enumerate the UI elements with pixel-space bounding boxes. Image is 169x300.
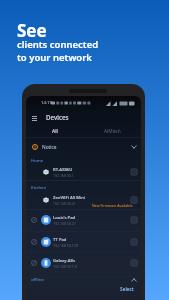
button[interactable]: offline — [31, 274, 137, 286]
button[interactable]: ZenWiFi AX Mini — [26, 191, 141, 209]
staticText: 192.168.50.27 — [53, 221, 76, 226]
staticText: AiMesh — [104, 128, 121, 135]
staticText: Kitchen — [31, 185, 47, 191]
staticText: 192.168.50.1 — [53, 173, 74, 178]
staticText: New Firmware Available — [92, 203, 133, 208]
button[interactable]: TT Pad — [26, 231, 141, 253]
staticText: 192.168.50.21 — [53, 201, 76, 206]
button[interactable]: RT-AX86U — [26, 164, 141, 180]
staticText: Select — [120, 286, 134, 293]
staticText: Notice — [42, 144, 57, 151]
button[interactable]: Notice — [26, 139, 141, 154]
staticText: ZenWiFi AX Mini — [53, 195, 86, 201]
button[interactable]: All — [26, 124, 83, 138]
staticText: Louis's Pad — [53, 215, 76, 221]
button[interactable]: Galaxy-A8s — [26, 252, 141, 274]
staticText: All — [52, 128, 58, 135]
button[interactable]: Louis's Pad — [26, 209, 141, 231]
staticText: TT Pad — [53, 237, 67, 243]
staticText: clients connected — [17, 38, 99, 51]
staticText: to your network — [17, 51, 92, 64]
staticText: offline — [31, 277, 44, 283]
staticText: Galaxy-A8s — [53, 258, 75, 264]
staticText: See — [17, 19, 47, 42]
staticText: Devices — [46, 113, 69, 121]
button[interactable]: Select — [116, 283, 138, 295]
staticText: 192.168.50.128 — [53, 243, 78, 248]
staticText: 192.168.50.131 — [53, 264, 78, 269]
staticText: Home — [31, 158, 44, 164]
button[interactable]: Open navigation menu — [28, 110, 40, 122]
button[interactable]: AiMesh — [83, 124, 141, 138]
staticText: 14:17 — [41, 100, 52, 106]
staticText: RT-AX86U — [53, 167, 73, 173]
